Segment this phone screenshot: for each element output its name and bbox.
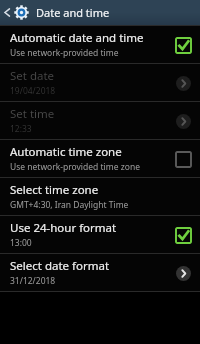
staticText: Set date bbox=[10, 68, 55, 84]
staticText: Use network-provided time zone bbox=[10, 161, 140, 173]
staticText: 31/12/2018 bbox=[10, 275, 56, 287]
staticText: Select time zone bbox=[10, 182, 99, 198]
button[interactable]: Set date bbox=[0, 64, 200, 101]
button[interactable]: Use 24-hour format bbox=[0, 216, 200, 253]
staticText: 19/04/2018 bbox=[10, 85, 56, 97]
button[interactable]: Select time zone bbox=[0, 178, 200, 215]
staticText: Select date format bbox=[10, 258, 110, 274]
staticText: Set time bbox=[10, 106, 55, 122]
staticText: 12:33 bbox=[10, 123, 32, 135]
button[interactable]: Automatic date and time bbox=[0, 26, 200, 63]
button[interactable]: Checked bbox=[174, 36, 192, 54]
staticText: Automatic time zone bbox=[10, 144, 122, 160]
button[interactable]: Open bbox=[174, 112, 192, 130]
staticText: Use 24-hour format bbox=[10, 220, 117, 236]
staticText: 13:00 bbox=[10, 237, 32, 249]
staticText: Automatic date and time bbox=[10, 30, 144, 46]
button[interactable]: Back bbox=[0, 0, 14, 25]
button[interactable]: Automatic time zone bbox=[0, 140, 200, 177]
button[interactable]: Open bbox=[174, 264, 192, 282]
button[interactable]: Open bbox=[174, 74, 192, 92]
staticText: Use network-provided time bbox=[10, 47, 119, 59]
staticText: GMT+4:30, Iran Daylight Time bbox=[10, 199, 129, 211]
button[interactable]: Checked bbox=[174, 226, 192, 244]
button[interactable]: Set time bbox=[0, 102, 200, 139]
staticText: Date and time bbox=[36, 5, 110, 20]
button[interactable]: Unchecked bbox=[174, 150, 192, 168]
button[interactable]: Select date format bbox=[0, 254, 200, 291]
